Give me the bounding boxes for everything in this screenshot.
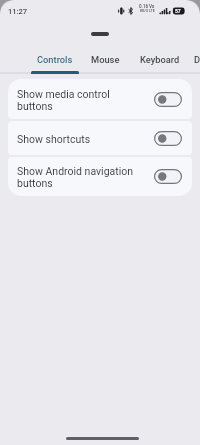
button[interactable]: Keyboard: [128, 51, 192, 74]
button[interactable]: Controls: [26, 51, 83, 74]
button[interactable]: Display: [192, 51, 200, 74]
staticText: KB/S: [140, 9, 149, 13]
staticText: Controls: [37, 54, 73, 65]
button[interactable]: Show Android navigation buttons: [8, 157, 192, 196]
staticText: Show media control buttons: [17, 88, 146, 113]
staticText: LTE: [149, 9, 155, 13]
staticText: Show Android navigation buttons: [17, 165, 146, 190]
button[interactable]: Mouse: [83, 51, 128, 74]
button[interactable]: Toggle: [154, 169, 182, 184]
staticText: Mouse: [91, 54, 120, 65]
button[interactable]: Show shortcuts: [8, 121, 192, 155]
staticText: Keyboard: [140, 54, 180, 65]
staticText: 57: [175, 8, 181, 14]
staticText: 0.16: [139, 4, 149, 9]
staticText: Vo: [149, 4, 155, 9]
button[interactable]: Show media control buttons: [8, 79, 192, 119]
staticText: Show shortcuts: [17, 133, 146, 145]
button[interactable]: Toggle: [154, 92, 182, 107]
staticText: 11:27: [8, 7, 28, 16]
button[interactable]: Toggle: [154, 131, 182, 146]
staticText: Display: [194, 54, 200, 65]
